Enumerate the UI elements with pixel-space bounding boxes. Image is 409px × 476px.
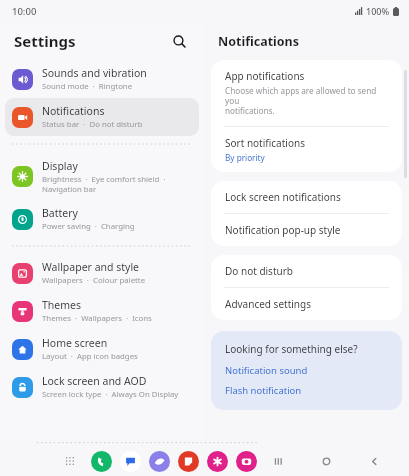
staticText: 10:00 bbox=[12, 5, 37, 18]
staticText: Sound mode · Ringtone bbox=[42, 81, 133, 92]
staticText: Power saving · Charging bbox=[42, 221, 135, 232]
staticText: Looking for something else? bbox=[225, 342, 358, 356]
staticText: Display bbox=[42, 159, 78, 173]
staticText: Notifications bbox=[218, 33, 300, 50]
button[interactable]: Battery bbox=[5, 200, 199, 238]
button[interactable]: Notifications bbox=[5, 98, 199, 136]
staticText: Brightness · Eye comfort shield · Naviga… bbox=[42, 174, 166, 194]
button[interactable]: Lock screen notifications bbox=[211, 181, 402, 213]
button[interactable]: Lock screen and AOD bbox=[5, 368, 199, 406]
button[interactable]: Sounds and vibration bbox=[5, 60, 199, 98]
button[interactable]: Back bbox=[363, 450, 385, 472]
button[interactable]: Recents bbox=[267, 450, 289, 472]
staticText: Layout · App icon badges bbox=[42, 351, 138, 362]
button[interactable]: Messages bbox=[120, 451, 141, 472]
button[interactable]: Search bbox=[168, 30, 190, 52]
staticText: Lock screen notifications bbox=[225, 190, 341, 204]
staticText: Status bar · Do not disturb bbox=[42, 119, 143, 130]
button[interactable]: Display bbox=[5, 152, 199, 200]
staticText: Lock screen and AOD bbox=[42, 374, 147, 388]
button[interactable]: Do not disturb bbox=[211, 255, 402, 287]
staticText: By priority bbox=[225, 152, 265, 163]
button[interactable]: Flash notification bbox=[225, 384, 302, 397]
staticText: App notifications bbox=[225, 69, 305, 83]
staticText: Home screen bbox=[42, 336, 108, 350]
staticText: 100% bbox=[366, 5, 390, 17]
staticText: Notifications bbox=[42, 104, 105, 118]
button[interactable]: Internet bbox=[149, 451, 170, 472]
button[interactable]: Home screen bbox=[5, 330, 199, 368]
staticText: Wallpaper and style bbox=[42, 260, 140, 274]
staticText: Wallpapers · Colour palette bbox=[42, 275, 146, 286]
staticText: Sort notifications bbox=[225, 136, 305, 150]
button[interactable]: App notifications bbox=[211, 60, 402, 126]
button[interactable]: Sort notifications bbox=[211, 127, 402, 172]
staticText: Choose which apps are allowed to send yo… bbox=[225, 85, 388, 117]
button[interactable]: Themes bbox=[5, 292, 199, 330]
staticText: Sounds and vibration bbox=[42, 66, 147, 80]
staticText: Themes · Wallpapers · Icons bbox=[42, 313, 152, 324]
button[interactable]: Notes bbox=[178, 451, 199, 472]
button[interactable]: Notification pop-up style bbox=[211, 214, 402, 246]
staticText: Settings bbox=[14, 31, 76, 51]
button[interactable]: Wallpaper and style bbox=[5, 254, 199, 292]
staticText: Advanced settings bbox=[225, 297, 311, 311]
button[interactable]: Phone bbox=[91, 451, 112, 472]
staticText: Screen lock type · Always On Display bbox=[42, 389, 179, 400]
button[interactable]: Galaxy Store bbox=[207, 451, 228, 472]
staticText: Notification pop-up style bbox=[225, 223, 341, 237]
staticText: Themes bbox=[42, 298, 82, 312]
button[interactable]: Advanced settings bbox=[211, 288, 402, 320]
button[interactable]: All apps bbox=[60, 451, 80, 471]
button[interactable]: Home bbox=[315, 450, 337, 472]
staticText: Battery bbox=[42, 206, 78, 220]
button[interactable]: Notification sound bbox=[225, 364, 308, 377]
staticText: Do not disturb bbox=[225, 264, 293, 278]
button[interactable]: Camera bbox=[236, 451, 257, 472]
